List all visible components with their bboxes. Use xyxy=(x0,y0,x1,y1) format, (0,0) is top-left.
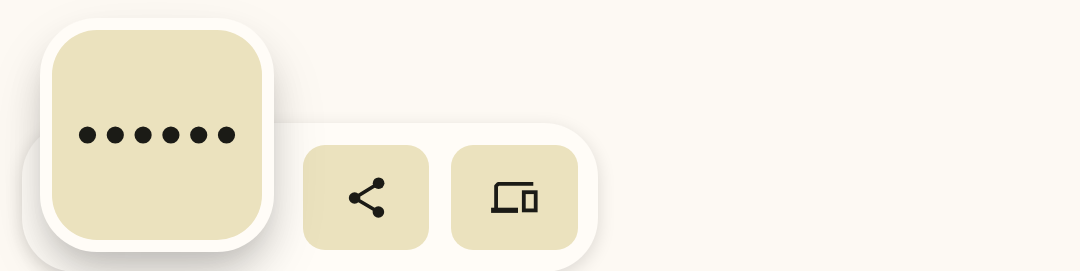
button[interactable]: Cast to device xyxy=(451,145,578,250)
button[interactable]: More options xyxy=(52,30,262,240)
button[interactable]: Share xyxy=(303,145,429,250)
